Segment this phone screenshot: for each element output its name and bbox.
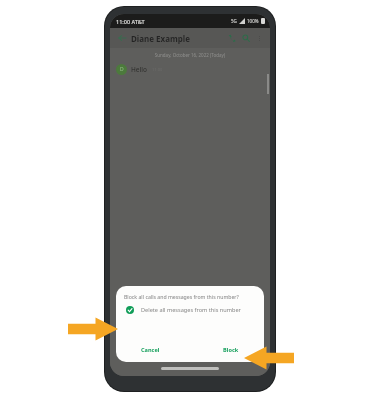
button[interactable]: Delete all messages from this number (124, 306, 256, 314)
staticText: D (120, 66, 124, 73)
button[interactable]: Back (115, 31, 129, 45)
staticText: Cancel (141, 346, 160, 354)
staticText: 100% (247, 18, 259, 24)
staticText: Hello (131, 65, 148, 74)
staticText: Block (223, 346, 239, 354)
staticText: 11:00 AT&T (116, 18, 145, 25)
button[interactable]: Call (225, 31, 239, 45)
staticText: Block all calls and messages from this n… (124, 293, 239, 300)
staticText: Delete all messages from this number (141, 306, 241, 314)
button[interactable]: Search (239, 31, 253, 45)
button[interactable]: Block (220, 344, 242, 356)
staticText: 5G (231, 18, 237, 24)
staticText: Sunday, October 16, 2022 (Today) (110, 52, 270, 58)
staticText: Diane Example (131, 33, 191, 44)
button[interactable]: Cancel (138, 344, 163, 356)
